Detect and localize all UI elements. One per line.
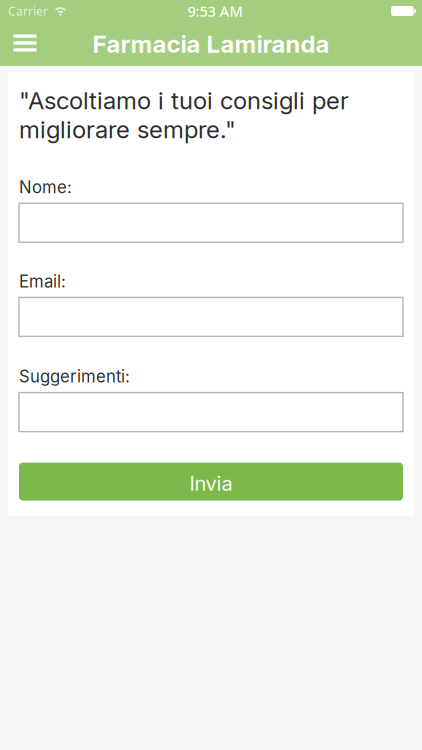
button[interactable]: Nome — [19, 203, 403, 242]
staticText: Carrier — [8, 3, 48, 19]
staticText: Suggerimenti: — [19, 366, 130, 387]
staticText: Email: — [19, 271, 66, 291]
button[interactable]: Suggerimenti — [19, 393, 403, 432]
button[interactable]: Menu — [0, 23, 50, 64]
staticText: Nome: — [19, 177, 72, 197]
staticText: 9:53 AM — [187, 1, 242, 21]
button[interactable]: Email — [19, 297, 403, 336]
staticText: "Ascoltiamo i tuoi consigli per migliora… — [19, 86, 349, 144]
staticText: Farmacia Lamiranda — [92, 29, 329, 58]
staticText: Invia — [189, 471, 232, 496]
button[interactable]: Invia — [19, 463, 403, 501]
